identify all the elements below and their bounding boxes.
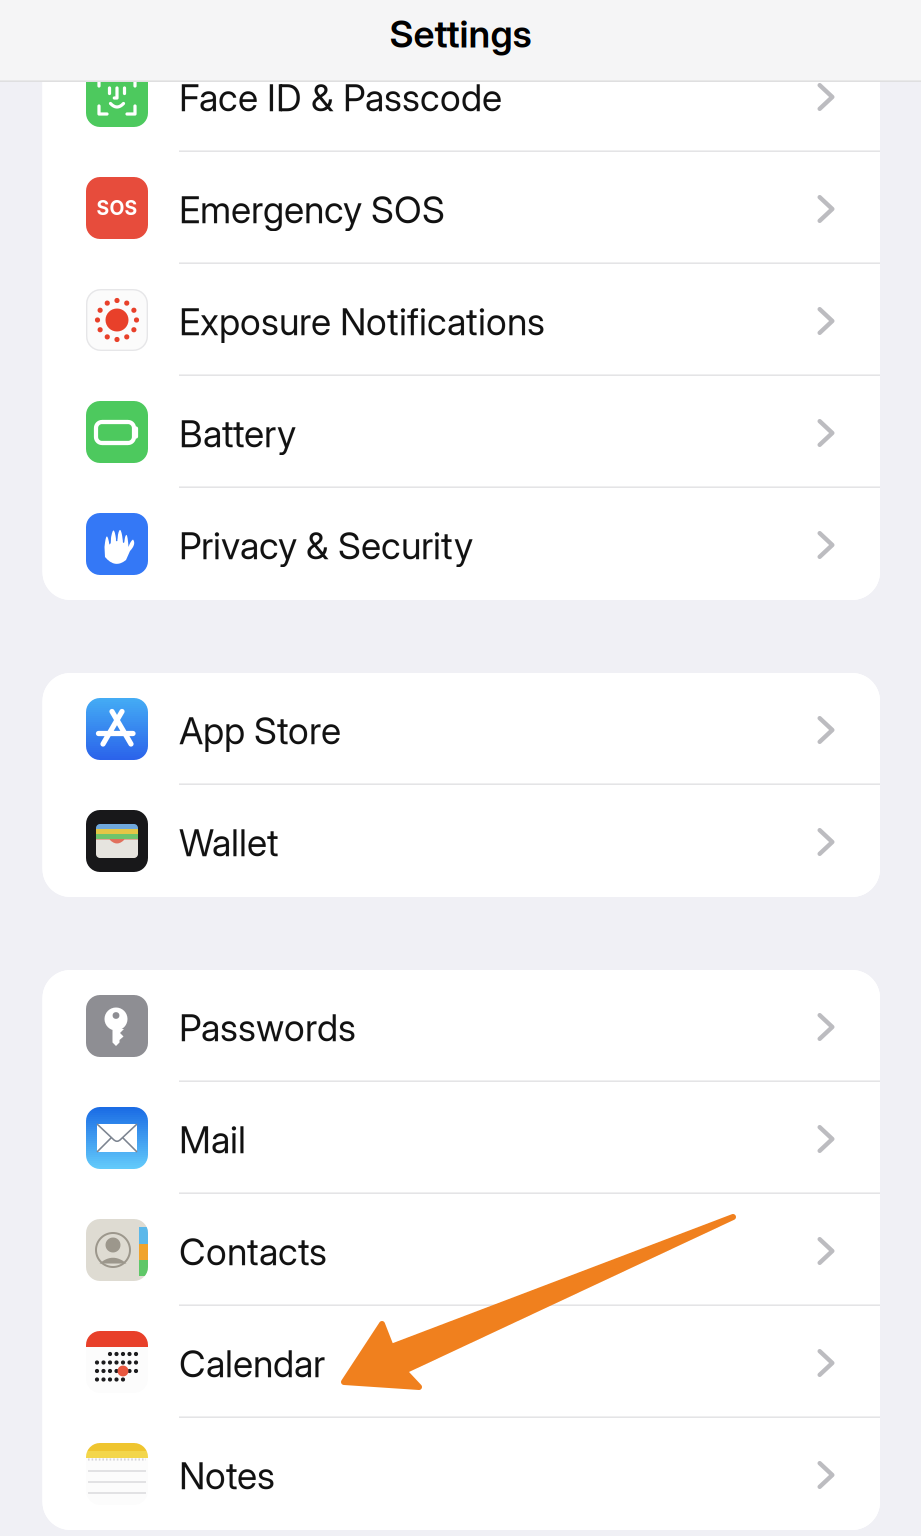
staticText: App Store xyxy=(179,709,341,753)
staticText: SOS xyxy=(96,196,137,220)
button[interactable]: Wallet xyxy=(42,785,880,897)
staticText: Passwords xyxy=(179,1006,356,1050)
staticText: Wallet xyxy=(179,821,279,865)
button[interactable]: Face ID & Passcode xyxy=(42,40,880,152)
staticText: Contacts xyxy=(179,1230,327,1274)
button[interactable]: Passwords xyxy=(42,970,880,1082)
button[interactable]: SOS xyxy=(42,152,880,264)
button[interactable]: Mail xyxy=(42,1082,880,1194)
button[interactable]: Contacts xyxy=(42,1194,880,1306)
staticText: Notes xyxy=(179,1454,275,1498)
staticText: Privacy & Security xyxy=(179,524,473,568)
button[interactable]: Privacy & Security xyxy=(42,488,880,600)
button[interactable]: Notes xyxy=(42,1418,880,1530)
button[interactable]: Exposure Notifications xyxy=(42,264,880,376)
button[interactable]: Battery xyxy=(42,376,880,488)
staticText: Calendar xyxy=(179,1342,325,1386)
staticText: Mail xyxy=(179,1118,246,1162)
staticText: Battery xyxy=(179,412,296,456)
button[interactable]: Calendar xyxy=(42,1306,880,1418)
staticText: Exposure Notifications xyxy=(179,300,545,344)
staticText: Emergency SOS xyxy=(179,188,445,232)
staticText: Face ID & Passcode xyxy=(179,76,502,120)
button[interactable]: App Store xyxy=(42,673,880,785)
staticText: Settings xyxy=(389,11,531,57)
